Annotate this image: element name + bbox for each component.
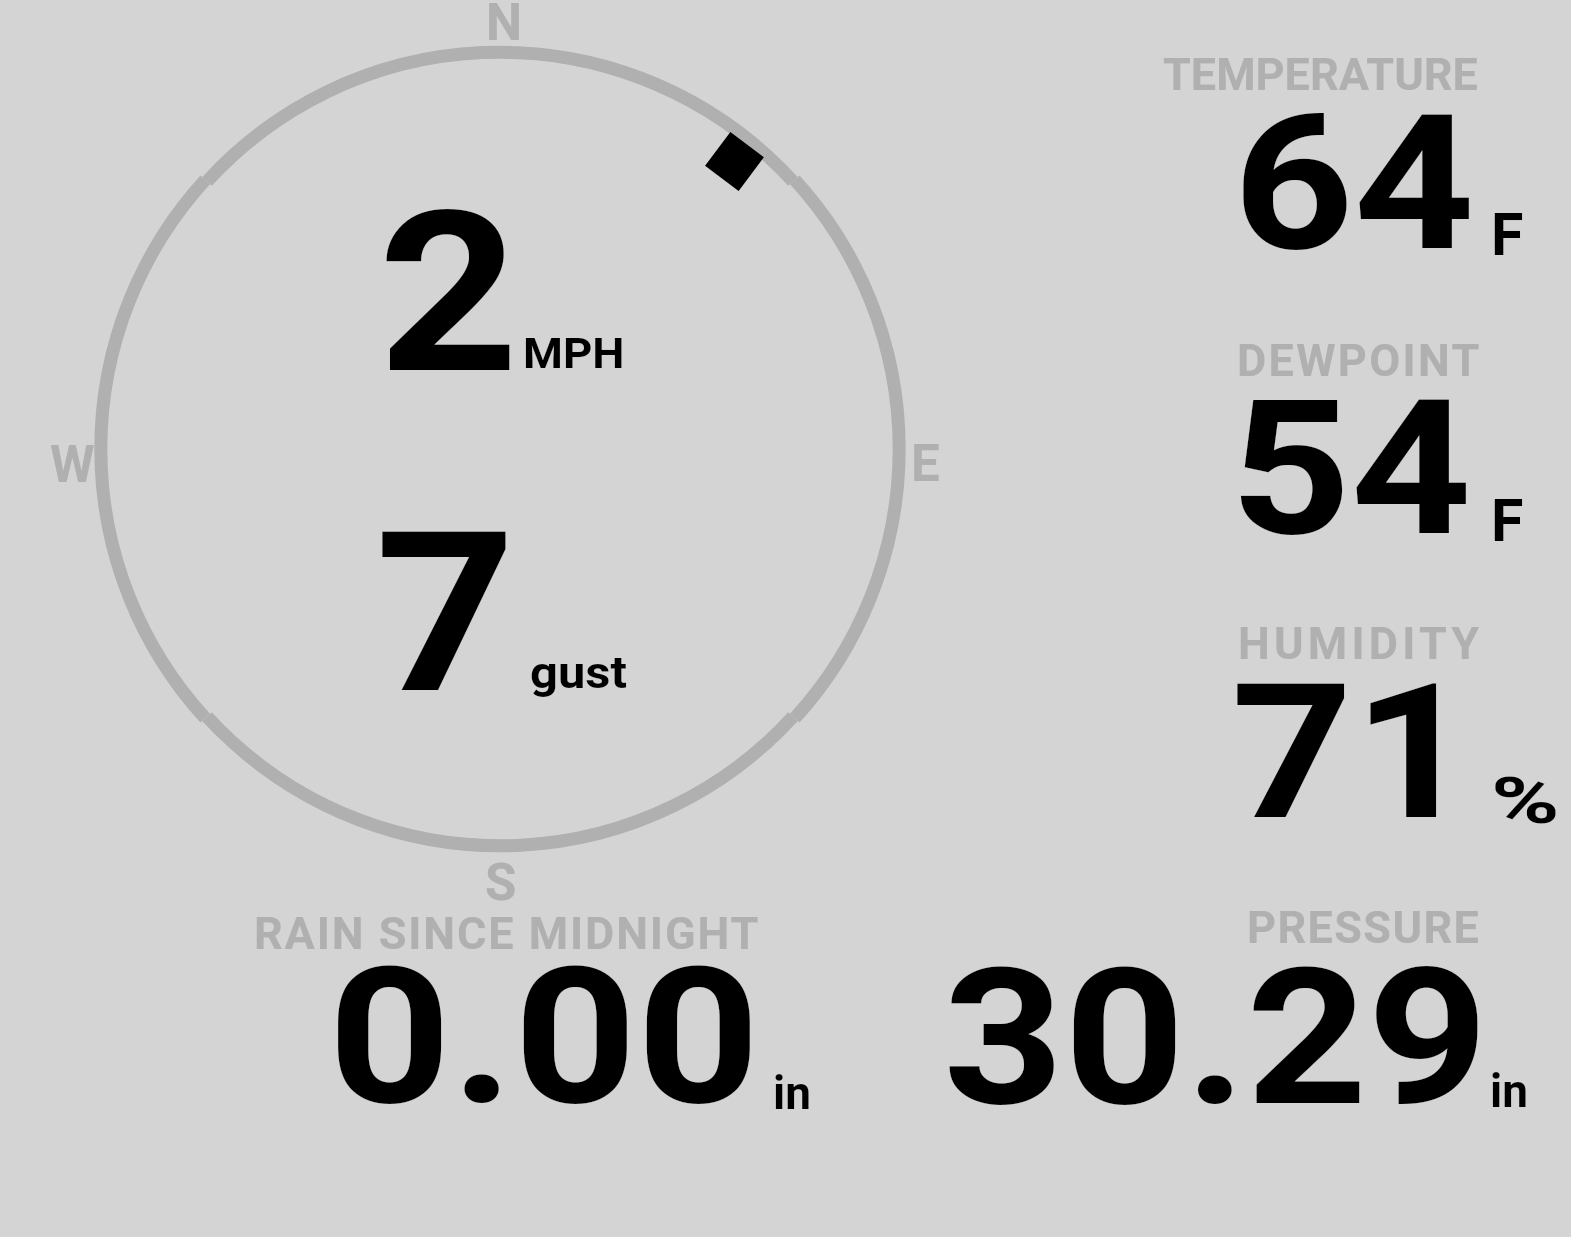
staticText: E — [911, 434, 940, 494]
button[interactable]: Rain since midnight 0.00 inches — [240, 905, 830, 1120]
button[interactable]: Dewpoint 54 degrees Fahrenheit — [1150, 335, 1560, 585]
staticText: TEMPERATURE — [1163, 48, 1478, 101]
staticText: gust — [530, 647, 618, 699]
staticText: in — [1490, 1064, 1528, 1118]
staticText: MPH — [523, 328, 619, 378]
staticText: W — [50, 435, 95, 495]
staticText: PRESSURE — [1247, 901, 1481, 954]
staticText: 7 — [375, 483, 503, 744]
staticText: in — [773, 1066, 811, 1120]
staticText: DEWPOINT — [1237, 334, 1482, 387]
staticText: 0.00 — [328, 926, 711, 1149]
button[interactable]: Pressure 30.29 inches — [930, 900, 1560, 1120]
staticText: F — [1491, 200, 1524, 269]
staticText: 71 — [1231, 643, 1447, 863]
button[interactable]: Wind 2 miles per hour, gusting 7 — [95, 44, 905, 854]
staticText: HUMIDITY — [1238, 617, 1484, 670]
staticText: RAIN SINCE MIDNIGHT — [254, 907, 761, 960]
button[interactable]: Temperature 64 degrees Fahrenheit — [1150, 50, 1560, 300]
staticText: S — [485, 853, 517, 913]
button[interactable]: Humidity 71 percent — [1150, 620, 1560, 870]
staticText: N — [486, 0, 523, 53]
staticText: F — [1491, 486, 1524, 555]
staticText: 54 — [1230, 359, 1446, 579]
staticText: 64 — [1233, 74, 1449, 294]
staticText: % — [1491, 764, 1539, 839]
staticText: 2 — [378, 163, 506, 424]
staticText: 30.29 — [943, 927, 1435, 1150]
